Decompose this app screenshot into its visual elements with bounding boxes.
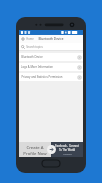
button[interactable]: Create A	[19, 142, 51, 157]
button[interactable]: Facebook - Connect	[51, 142, 83, 157]
staticText: Facebook - Connect	[55, 144, 79, 148]
button[interactable]: Navigate up	[19, 35, 36, 43]
button[interactable]: Logs & More Information	[19, 63, 83, 71]
staticText: Bluetooth Device	[38, 37, 64, 41]
button[interactable]: Privacy and Statistics Permission	[19, 73, 83, 81]
button[interactable]: Search topics	[19, 43, 83, 51]
staticText: Privacy and Statistics Permission	[21, 75, 63, 79]
staticText: Profile Now	[23, 150, 47, 156]
staticText: Home	[26, 37, 34, 41]
staticText: Logs & More Information	[21, 65, 53, 69]
button[interactable]: Bluetooth Device	[19, 53, 83, 61]
button[interactable]: Install	[47, 145, 56, 154]
staticText: Search topics	[26, 45, 43, 49]
staticText: Bluetooth Device	[21, 55, 43, 59]
staticText: Create A	[26, 144, 44, 150]
staticText: Facebook	[63, 153, 72, 156]
staticText: To The World	[59, 148, 75, 152]
button[interactable]: Home	[42, 160, 60, 167]
